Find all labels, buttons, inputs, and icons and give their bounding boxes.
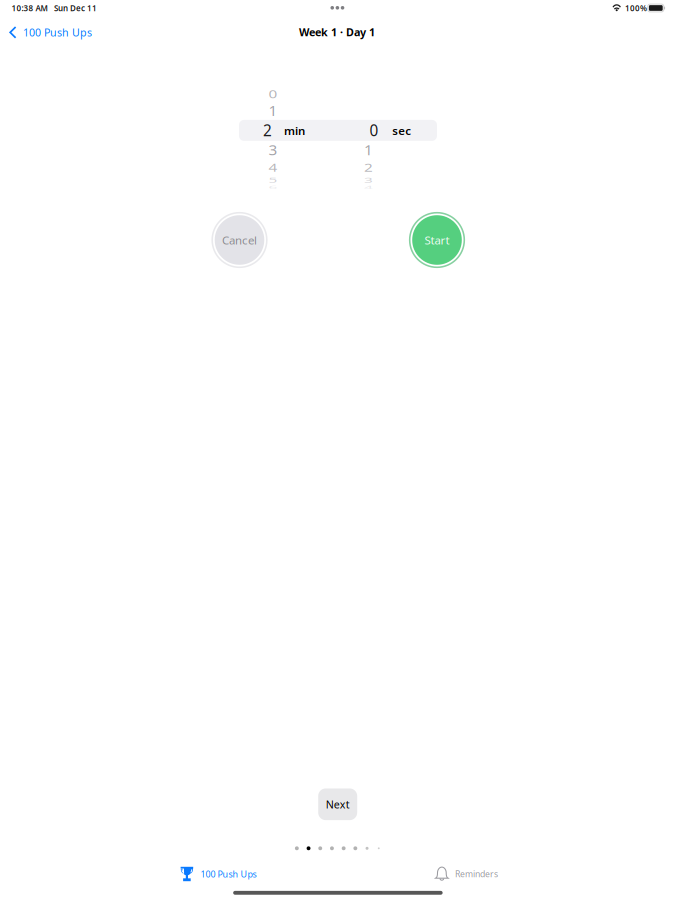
staticText: 4 xyxy=(268,157,277,178)
button[interactable]: Next xyxy=(318,788,357,820)
staticText: Cancel xyxy=(222,232,257,248)
button[interactable]: Page 2 of 8 xyxy=(291,843,385,853)
staticText: 3 xyxy=(364,170,373,190)
staticText: sec xyxy=(392,123,411,138)
staticText: min xyxy=(284,123,305,138)
button[interactable]: 100 Push Ups xyxy=(174,861,263,887)
button[interactable]: Cancel xyxy=(211,212,267,268)
staticText: 2 xyxy=(263,120,272,141)
staticText: 0 xyxy=(369,120,378,141)
button[interactable]: Reminders xyxy=(429,861,504,887)
staticText: Start xyxy=(424,232,449,248)
staticText: 5 xyxy=(268,170,277,190)
staticText: Next xyxy=(326,797,350,811)
staticText: 1 xyxy=(364,139,373,160)
staticText: 100% xyxy=(625,3,647,14)
staticText: 2 xyxy=(364,157,373,178)
staticText: 100 Push Ups xyxy=(23,25,92,40)
staticText: Sun Dec 11 xyxy=(54,3,97,14)
staticText: 4 xyxy=(364,177,373,198)
staticText: Reminders xyxy=(455,868,498,880)
button[interactable]: 100 Push Ups xyxy=(0,18,102,47)
staticText: 0 xyxy=(268,83,277,104)
staticText: Week 1 · Day 1 xyxy=(299,25,375,39)
staticText: 6 xyxy=(268,177,277,198)
staticText: 100 Push Ups xyxy=(201,868,257,880)
button[interactable]: Start xyxy=(409,212,465,268)
staticText: 10:38 AM xyxy=(12,3,48,14)
staticText: 1 xyxy=(268,100,277,121)
staticText: 3 xyxy=(268,139,277,160)
